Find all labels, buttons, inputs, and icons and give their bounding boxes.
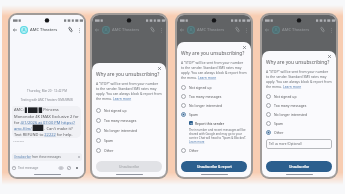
staticText: No longer interested: [274, 112, 308, 117]
staticText: Other: [104, 148, 114, 153]
button[interactable]: Add: [73, 164, 80, 171]
button[interactable]: More options: [242, 26, 250, 34]
staticText: A “STOP” will be sent from your number t…: [96, 81, 162, 101]
button[interactable]: Too many messages: [181, 92, 247, 101]
staticText: Not signed up: [274, 94, 297, 99]
button[interactable]: Spam: [266, 119, 332, 128]
staticText: Report this sender: [195, 121, 225, 125]
staticText: Text message: [18, 166, 39, 170]
staticText: AMC Theaters: [112, 27, 140, 33]
staticText: Why are you unsubscribing?: [266, 59, 330, 66]
button[interactable]: Spam: [96, 135, 162, 145]
button[interactable]: Not signed up: [96, 105, 162, 115]
staticText: Tell us more (Optional): [269, 142, 302, 146]
staticText: Why are you unsubscribing?: [181, 50, 245, 57]
staticText: Unsubscribe: [119, 164, 140, 169]
staticText: AMC Theaters: [282, 27, 310, 33]
staticText: AMC Theaters: [30, 27, 58, 33]
button[interactable]: No longer interested: [96, 125, 162, 135]
button[interactable]: Tell us more (Optional): [266, 139, 332, 149]
staticText: No longer interested: [104, 128, 138, 133]
button[interactable]: Close: [241, 44, 247, 50]
staticText: A “STOP” will be sent from your number t…: [266, 69, 332, 89]
button[interactable]: Too many messages: [266, 101, 332, 110]
button[interactable]: No longer interested: [181, 101, 247, 110]
button[interactable]: Gallery: [65, 164, 72, 171]
button[interactable]: Other: [181, 146, 247, 155]
staticText: Unsubscribe from these messages: [14, 155, 61, 159]
button[interactable]: Close: [326, 53, 332, 59]
button[interactable]: Unsubscribe from these messages: [12, 153, 82, 161]
button[interactable]: Back: [11, 26, 19, 34]
staticText: A “STOP” will be sent from your number t…: [181, 60, 247, 80]
staticText: Texting with AMC Theaters (SMS/MMS): [10, 98, 84, 102]
button[interactable]: Back: [93, 26, 101, 34]
button[interactable]: Back: [263, 26, 271, 34]
button[interactable]: Other: [266, 128, 332, 137]
staticText: AMC: L ogan Ki Princess Mononoke 4K IMAX…: [14, 107, 79, 137]
staticText: Not signed up: [189, 85, 212, 90]
button[interactable]: Other: [96, 145, 162, 155]
button[interactable]: Back: [178, 26, 186, 34]
staticText: Too many messages: [274, 103, 307, 108]
button[interactable]: No longer interested: [266, 110, 332, 119]
button[interactable]: Unsubscribe: [96, 161, 162, 172]
button[interactable]: Unsubscribe & report: [181, 161, 247, 172]
button[interactable]: Spam: [181, 110, 247, 119]
button[interactable]: Call: [66, 25, 75, 34]
button[interactable]: Call: [148, 25, 157, 34]
staticText: Why are you unsubscribing?: [96, 71, 160, 78]
staticText: Spam: [104, 138, 114, 143]
staticText: Not signed up: [104, 108, 127, 113]
staticText: Too many messages: [189, 94, 222, 99]
button[interactable]: Unsubscribe: [266, 161, 332, 172]
staticText: Unsubscribe & report: [197, 164, 232, 169]
staticText: Other: [274, 130, 284, 135]
button[interactable]: Report this sender: [189, 119, 247, 126]
staticText: Spam: [274, 121, 284, 126]
staticText: Other: [189, 148, 199, 153]
staticText: No longer interested: [189, 103, 223, 108]
staticText: AMC Theaters: [197, 27, 225, 33]
staticText: Unsubscribe: [289, 164, 310, 169]
button[interactable]: Call: [318, 25, 327, 34]
staticText: Their number and recent messages will be…: [189, 128, 247, 144]
button[interactable]: Camera: [57, 164, 64, 171]
button[interactable]: More options: [157, 26, 165, 34]
button[interactable]: Call: [233, 25, 242, 34]
button[interactable]: Not signed up: [181, 83, 247, 92]
button[interactable]: More options: [75, 26, 83, 34]
button[interactable]: Close: [156, 65, 162, 71]
staticText: Too many messages: [104, 118, 137, 123]
staticText: Thursday, Mar 20 · 12:42 PM: [10, 89, 84, 93]
staticText: 12:43 PM: [13, 139, 24, 142]
button[interactable]: More options: [327, 26, 335, 34]
button[interactable]: Not signed up: [266, 92, 332, 101]
button[interactable]: Too many messages: [96, 115, 162, 125]
staticText: Spam: [189, 112, 199, 117]
